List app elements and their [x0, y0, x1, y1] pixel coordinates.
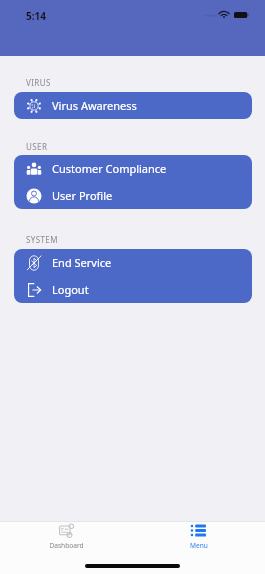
- button[interactable]: User Profile: [14, 182, 252, 209]
- staticText: User Profile: [52, 188, 113, 203]
- button[interactable]: Logout: [14, 276, 252, 303]
- staticText: Virus Awareness: [52, 98, 137, 113]
- staticText: 5:14: [26, 9, 46, 23]
- staticText: Logout: [52, 282, 89, 297]
- button[interactable]: Menu tab: [132, 522, 265, 550]
- button[interactable]: Virus Awareness: [14, 92, 252, 119]
- staticText: Menu: [190, 541, 208, 550]
- button[interactable]: Dashboard tab: [0, 522, 132, 550]
- button[interactable]: Customer Compliance: [14, 155, 252, 182]
- staticText: Customer Compliance: [52, 161, 167, 176]
- staticText: Dashboard: [49, 541, 84, 550]
- staticText: USER: [26, 141, 48, 152]
- staticText: End Service: [52, 255, 112, 270]
- other: Menu tab: [191, 523, 206, 538]
- staticText: SYSTEM: [26, 234, 58, 245]
- staticText: VIRUS: [26, 77, 51, 88]
- button[interactable]: End Service: [14, 249, 252, 276]
- other: Dashboard tab: [59, 523, 74, 538]
